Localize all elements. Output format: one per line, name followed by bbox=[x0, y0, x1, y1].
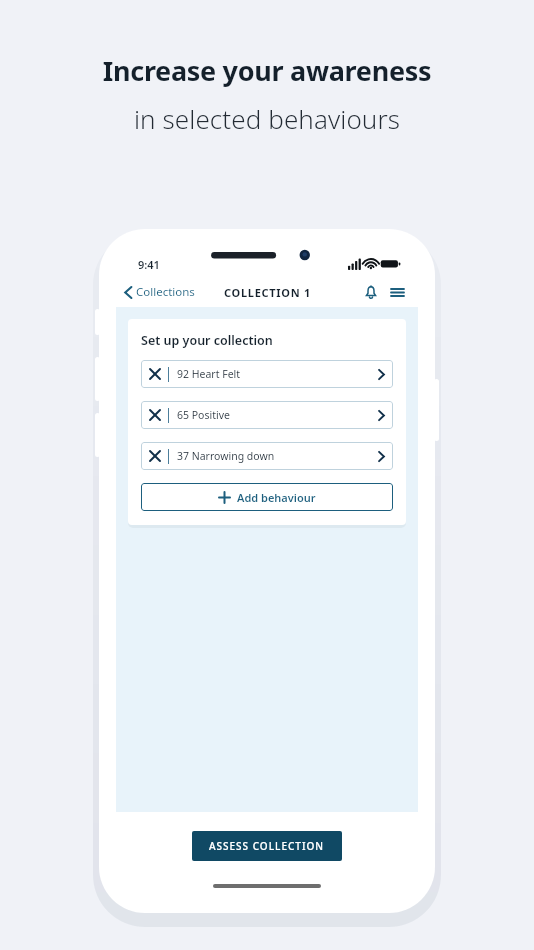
staticText: in selected behaviours bbox=[0, 101, 534, 136]
button[interactable]: Menu bbox=[387, 283, 408, 302]
button[interactable]: Add behaviour bbox=[141, 483, 393, 511]
staticText: 9:41 bbox=[138, 257, 160, 272]
button[interactable]: Remove 37 Narrowing down bbox=[149, 450, 161, 462]
staticText: 37 Narrowing down bbox=[177, 449, 378, 463]
staticText: 92 Heart Felt bbox=[177, 367, 378, 381]
staticText: COLLECTION 1 bbox=[224, 285, 311, 300]
staticText: Collections bbox=[136, 284, 195, 300]
button[interactable]: Remove 65 Positive bbox=[149, 409, 161, 421]
button[interactable]: ASSESS COLLECTION bbox=[192, 831, 342, 861]
staticText: Add behaviour bbox=[237, 490, 316, 505]
staticText: Increase your awareness bbox=[0, 52, 534, 89]
button[interactable]: Notifications bbox=[361, 282, 381, 303]
staticText: ASSESS COLLECTION bbox=[209, 839, 325, 853]
button[interactable]: Remove 92 Heart Felt bbox=[141, 360, 393, 388]
button[interactable]: Remove 37 Narrowing down bbox=[141, 442, 393, 470]
staticText: Set up your collection bbox=[141, 332, 273, 349]
staticText: 65 Positive bbox=[177, 408, 378, 422]
button[interactable]: Remove 92 Heart Felt bbox=[149, 368, 161, 380]
button[interactable]: Collections bbox=[116, 281, 201, 303]
button[interactable]: Remove 65 Positive bbox=[141, 401, 393, 429]
